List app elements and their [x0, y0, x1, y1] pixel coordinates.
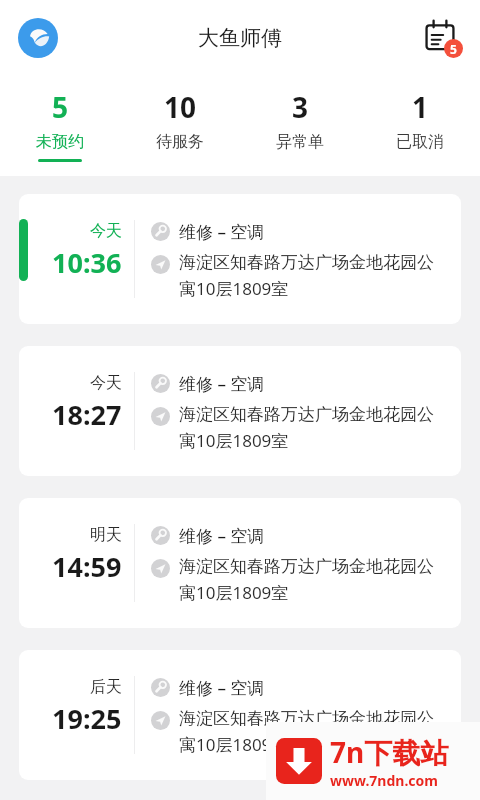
button[interactable]: 3: [240, 76, 360, 176]
staticText: 18:27: [52, 396, 122, 433]
staticText: 海淀区知春路万达广场金地花园公寓10层1809室: [179, 404, 447, 452]
staticText: 今天: [90, 221, 122, 241]
staticText: 维修 – 空调: [179, 676, 265, 699]
staticText: 未预约: [36, 132, 84, 152]
staticText: 已取消: [396, 132, 444, 152]
staticText: 海淀区知春路万达广场金地花园公寓10层1809室: [179, 708, 447, 756]
button[interactable]: 今天: [19, 346, 461, 476]
staticText: 5: [52, 88, 69, 126]
staticText: 今天: [90, 373, 122, 393]
staticText: 7n下载站: [330, 733, 449, 771]
staticText: 5: [450, 41, 457, 57]
staticText: 待服务: [156, 132, 204, 152]
staticText: 海淀区知春路万达广场金地花园公寓10层1809室: [179, 252, 447, 300]
staticText: 10: [164, 88, 197, 126]
staticText: 大鱼师傅: [198, 25, 282, 51]
button[interactable]: 5: [0, 76, 120, 176]
staticText: www.7ndn.com: [330, 771, 438, 790]
staticText: 海淀区知春路万达广场金地花园公寓10层1809室: [179, 556, 447, 604]
button[interactable]: Schedule: [420, 15, 466, 61]
staticText: 1: [412, 88, 429, 126]
button[interactable]: 明天: [19, 498, 461, 628]
staticText: 19:25: [52, 700, 122, 737]
staticText: 异常单: [276, 132, 324, 152]
staticText: 维修 – 空调: [179, 220, 265, 243]
button[interactable]: 后天: [19, 650, 461, 780]
staticText: 14:59: [52, 548, 122, 585]
staticText: 维修 – 空调: [179, 372, 265, 395]
button[interactable]: 1: [360, 76, 480, 176]
staticText: 维修 – 空调: [179, 524, 265, 547]
staticText: 后天: [90, 677, 122, 697]
staticText: 明天: [90, 525, 122, 545]
button[interactable]: Profile: [16, 16, 60, 60]
button[interactable]: 10: [120, 76, 240, 176]
button[interactable]: 今天: [19, 194, 461, 324]
staticText: 3: [292, 88, 309, 126]
staticText: 10:36: [52, 244, 122, 281]
